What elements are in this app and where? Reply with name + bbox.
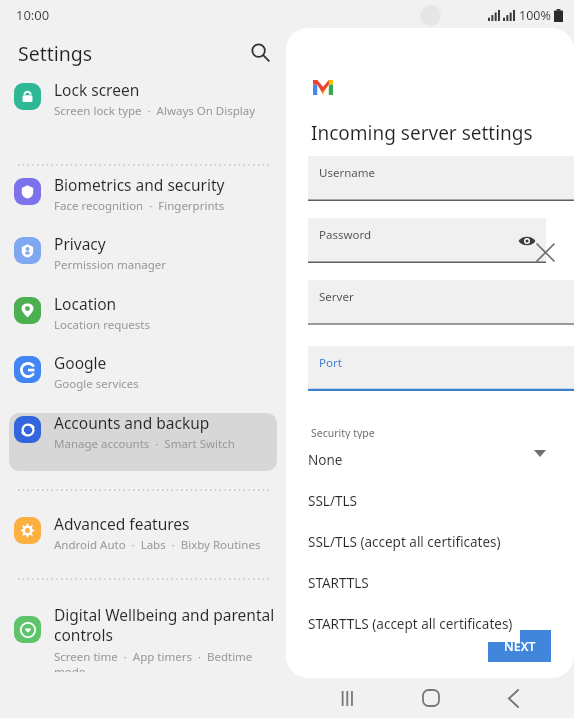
button[interactable]: Username bbox=[308, 156, 574, 201]
staticText: Accounts and backup bbox=[54, 412, 210, 433]
button[interactable]: STARTTLS bbox=[300, 562, 520, 603]
staticText: STARTTLS bbox=[308, 574, 369, 592]
staticText: Privacy bbox=[54, 233, 106, 254]
staticText: NEXT bbox=[504, 638, 536, 655]
button[interactable]: Google bbox=[0, 348, 285, 402]
button[interactable]: Home bbox=[409, 676, 453, 718]
staticText: 10:00 bbox=[16, 6, 50, 24]
staticText: Port bbox=[319, 355, 342, 371]
staticText: Face recognition · Fingerprints bbox=[54, 198, 225, 214]
button[interactable]: Lock screen bbox=[0, 75, 285, 129]
button[interactable]: Privacy bbox=[0, 229, 285, 283]
staticText: Username bbox=[319, 165, 375, 181]
button[interactable] bbox=[9, 413, 277, 471]
staticText: Screen time · App timers · Bedtime mode bbox=[54, 649, 279, 672]
staticText: Digital Wellbeing and parental controls bbox=[54, 604, 275, 646]
button[interactable]: None bbox=[300, 439, 520, 480]
staticText: Incoming server settings bbox=[311, 120, 533, 146]
staticText: Password bbox=[319, 227, 372, 243]
staticText: STARTTLS (accept all certificates) bbox=[308, 615, 513, 633]
button[interactable]: Clear bbox=[531, 238, 559, 266]
button[interactable]: Port bbox=[308, 346, 574, 391]
staticText: Location bbox=[54, 293, 117, 314]
button[interactable]: Biometrics and security bbox=[0, 170, 285, 224]
staticText: Security type bbox=[311, 426, 375, 440]
button[interactable]: Search bbox=[238, 30, 282, 74]
staticText: Settings bbox=[18, 40, 93, 67]
button[interactable]: Server bbox=[308, 280, 574, 325]
button[interactable]: Digital Wellbeing and parental controls bbox=[0, 600, 285, 668]
button[interactable]: SSL/TLS bbox=[300, 480, 520, 521]
button[interactable]: Show password bbox=[514, 228, 540, 254]
button[interactable]: NEXT bbox=[488, 630, 551, 662]
staticText: None bbox=[308, 451, 343, 469]
staticText: Advanced features bbox=[54, 513, 190, 534]
staticText: Manage accounts · Smart Switch bbox=[54, 436, 235, 452]
staticText: SSL/TLS (accept all certificates) bbox=[308, 533, 501, 551]
button[interactable]: Back bbox=[491, 676, 535, 718]
staticText: Google bbox=[54, 352, 107, 373]
staticText: SSL/TLS bbox=[308, 492, 357, 510]
staticText: Biometrics and security bbox=[54, 174, 225, 195]
button[interactable]: Password bbox=[308, 218, 546, 263]
staticText: Location requests bbox=[54, 317, 150, 333]
button[interactable]: STARTTLS (accept all certificates) bbox=[300, 603, 520, 644]
staticText: 100% bbox=[519, 7, 551, 24]
staticText: Android Auto · Labs · Bixby Routines bbox=[54, 537, 261, 553]
staticText: Lock screen bbox=[54, 79, 140, 100]
button[interactable]: SSL/TLS (accept all certificates) bbox=[300, 521, 520, 562]
staticText: Server bbox=[319, 289, 354, 305]
staticText: Google services bbox=[54, 376, 139, 392]
button[interactable]: Advanced features bbox=[0, 509, 285, 563]
staticText: Permission manager bbox=[54, 257, 167, 273]
staticText: Screen lock type · Always On Display bbox=[54, 103, 256, 119]
button[interactable]: Accounts and backup bbox=[0, 408, 285, 462]
button[interactable]: Recents bbox=[326, 676, 370, 718]
button[interactable]: Location bbox=[0, 289, 285, 343]
